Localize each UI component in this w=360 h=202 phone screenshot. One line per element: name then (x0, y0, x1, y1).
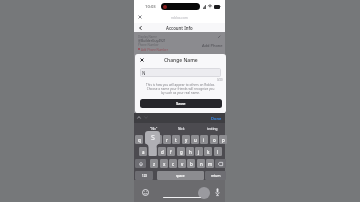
button[interactable]: l (214, 147, 222, 156)
staticText: x (163, 161, 166, 167)
staticText: t (175, 137, 177, 143)
button[interactable]: v (178, 159, 186, 168)
staticText: Done (211, 116, 222, 121)
staticText: Add Phone Number (141, 48, 168, 52)
button[interactable]: Save (140, 99, 222, 108)
button[interactable]: Edit display name (218, 35, 221, 38)
button[interactable]: t (172, 135, 180, 144)
button[interactable]: s (149, 147, 157, 156)
button[interactable]: m (206, 159, 214, 168)
staticText: space (176, 174, 185, 178)
staticText: Save (176, 101, 186, 107)
staticText: This is how you will appear to others on… (145, 83, 216, 95)
button[interactable]: r (163, 135, 171, 144)
staticText: d (161, 149, 164, 155)
button[interactable]: Close (138, 15, 142, 19)
button[interactable]: b (187, 159, 195, 168)
staticText: N (142, 70, 146, 76)
button[interactable]: z (150, 159, 158, 168)
button[interactable]: j (195, 147, 203, 156)
button[interactable]: k (204, 147, 212, 156)
button[interactable]: h (186, 147, 194, 156)
staticText: Phone Number (138, 43, 159, 47)
button[interactable]: o (210, 135, 218, 144)
staticText: l (217, 149, 219, 155)
button[interactable]: Previous field (137, 116, 141, 119)
button[interactable]: y (182, 135, 190, 144)
staticText: Display Name (138, 35, 157, 39)
staticText: @BuilderGuy4921 (138, 38, 166, 42)
button[interactable]: u (191, 135, 199, 144)
button[interactable]: Emoji keyboard (142, 189, 149, 196)
button[interactable]: g (177, 147, 185, 156)
staticText: q (138, 137, 141, 143)
staticText: texting (207, 127, 218, 131)
button[interactable]: c (169, 159, 177, 168)
staticText: Change Name (164, 57, 198, 64)
button[interactable]: Dictation (215, 188, 220, 196)
staticText: b (190, 161, 193, 167)
staticText: o (213, 137, 216, 143)
staticText: i (203, 137, 205, 143)
button[interactable]: “Nic” (143, 125, 165, 132)
button[interactable]: a (139, 147, 147, 156)
staticText: j (198, 149, 200, 155)
button[interactable]: e (154, 135, 162, 144)
staticText: 123 (142, 174, 147, 178)
staticText: Account Info (166, 25, 193, 31)
button[interactable]: f (167, 147, 175, 156)
staticText: h (189, 149, 192, 155)
staticText: y (185, 137, 188, 143)
button[interactable]: Switch keyboard (198, 187, 210, 199)
staticText: 0/20 (217, 78, 223, 82)
button[interactable]: space (157, 171, 204, 180)
button[interactable]: n (197, 159, 205, 168)
button[interactable]: 123 (135, 171, 153, 180)
button[interactable]: return (205, 171, 226, 180)
button[interactable]: Add Phone (202, 43, 223, 48)
button[interactable]: Back (139, 26, 142, 30)
staticText: z (153, 161, 156, 167)
staticText: p (222, 137, 225, 143)
staticText: “Nic” (150, 127, 158, 131)
staticText: a (142, 149, 145, 155)
button[interactable]: d (158, 147, 166, 156)
staticText: return (211, 174, 221, 178)
staticText: Nick (178, 127, 185, 131)
staticText: 10:03 (145, 4, 156, 10)
button[interactable]: p (219, 135, 227, 144)
staticText: n (200, 161, 203, 167)
staticText: r (166, 137, 168, 143)
staticText: roblox.com (171, 16, 188, 20)
staticText: f (170, 149, 172, 155)
button[interactable]: texting (201, 125, 223, 132)
button[interactable]: Close dialog (140, 58, 144, 62)
button[interactable]: i (200, 135, 208, 144)
button[interactable]: x (160, 159, 168, 168)
button[interactable]: w (145, 135, 153, 144)
button[interactable]: Backspace (215, 159, 226, 168)
staticText: S (151, 133, 155, 143)
button[interactable]: q (135, 135, 143, 144)
button[interactable]: Nick (170, 125, 192, 132)
staticText: u (194, 137, 197, 143)
button[interactable]: Done (211, 116, 222, 121)
staticText: c (172, 161, 175, 167)
staticText: m (208, 161, 213, 167)
button[interactable]: Next field (144, 116, 148, 119)
staticText: g (180, 149, 183, 155)
staticText: k (207, 149, 210, 155)
staticText: v (181, 161, 184, 167)
button[interactable]: Shift (135, 159, 146, 168)
